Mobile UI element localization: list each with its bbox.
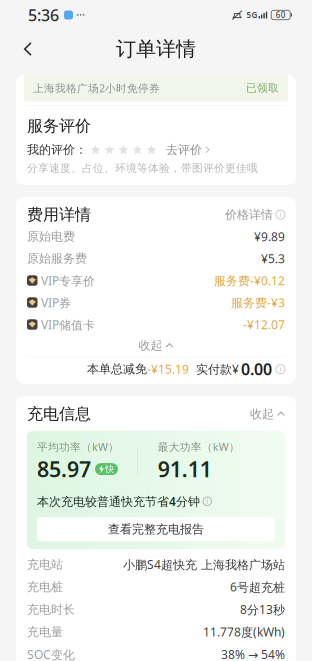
staticText: 实付款¥ bbox=[196, 361, 239, 377]
staticText: 服务费-¥0.12 bbox=[214, 272, 285, 288]
staticText: 38% → 54% bbox=[221, 646, 285, 661]
staticText: 85.97 bbox=[37, 455, 91, 483]
staticText: 价格详情 bbox=[225, 207, 273, 222]
staticText: VIP券 bbox=[41, 294, 71, 310]
staticText: i bbox=[279, 210, 281, 219]
staticText: 60 bbox=[276, 10, 286, 20]
staticText: 充电站 bbox=[27, 557, 63, 572]
staticText: 充电量 bbox=[27, 625, 63, 639]
staticText: 原始电费 bbox=[27, 229, 75, 244]
staticText: 去评价 bbox=[166, 142, 202, 157]
staticText: ¥5.3 bbox=[261, 250, 285, 266]
staticText: i bbox=[279, 365, 281, 374]
staticText: VIP专享价 bbox=[41, 272, 95, 288]
staticText: -¥12.07 bbox=[243, 316, 285, 332]
staticText: 服务费-¥3 bbox=[231, 294, 285, 310]
staticText: 已领取 bbox=[246, 81, 279, 94]
staticText: -¥15.19 bbox=[147, 361, 189, 377]
button[interactable]: 查看完整充电报告 bbox=[37, 517, 275, 541]
staticText: 91.11 bbox=[158, 455, 212, 483]
staticText: 订单详情 bbox=[116, 37, 196, 61]
button[interactable]: 返回 bbox=[10, 34, 46, 64]
staticText: 费用详情 bbox=[27, 205, 91, 225]
staticText: 本单总减免 bbox=[87, 362, 147, 376]
staticText: 服务评价 bbox=[27, 116, 91, 136]
staticText: 本次充电较普通快充节省4分钟 bbox=[37, 493, 200, 509]
button[interactable]: 上海我格广场2小时免停券 bbox=[24, 74, 288, 101]
staticText: 6号超充桩 bbox=[230, 579, 285, 595]
staticText: ¥9.89 bbox=[254, 228, 285, 244]
staticText: 8分13秒 bbox=[240, 601, 285, 617]
staticText: 平均功率（kW） bbox=[37, 440, 119, 454]
staticText: 充电桩 bbox=[27, 580, 63, 594]
staticText: 收起 bbox=[138, 338, 162, 353]
staticText: 小鹏S4超快充 上海我格广场站 bbox=[123, 556, 285, 572]
staticText: 最大功率（kW） bbox=[158, 440, 240, 454]
staticText: 快 bbox=[105, 463, 114, 475]
staticText: 查看完整充电报告 bbox=[108, 522, 204, 536]
staticText: i bbox=[206, 497, 208, 506]
button[interactable]: 我的评价： bbox=[27, 141, 285, 159]
staticText: 分享速度、占位、环境等体验，带图评价更佳哦 bbox=[27, 162, 258, 175]
button[interactable]: 价格详情 bbox=[225, 207, 285, 222]
staticText: SOC变化 bbox=[27, 646, 75, 661]
staticText: 收起 bbox=[250, 407, 274, 421]
staticText: 我的评价： bbox=[27, 142, 87, 157]
button[interactable]: 收起 bbox=[250, 407, 285, 421]
staticText: 11.778度(kWh) bbox=[203, 624, 285, 640]
staticText: 上海我格广场2小时免停券 bbox=[33, 81, 160, 95]
staticText: 0.00 bbox=[241, 358, 272, 380]
staticText: 5G bbox=[247, 10, 258, 20]
staticText: 充电信息 bbox=[27, 404, 91, 424]
staticText: VIP储值卡 bbox=[41, 316, 95, 332]
staticText: 5:36 bbox=[28, 4, 59, 26]
button[interactable]: 收起 bbox=[27, 335, 285, 355]
staticText: 原始服务费 bbox=[27, 251, 87, 266]
staticText: ··· bbox=[76, 7, 85, 23]
staticText: 充电时长 bbox=[27, 602, 75, 617]
